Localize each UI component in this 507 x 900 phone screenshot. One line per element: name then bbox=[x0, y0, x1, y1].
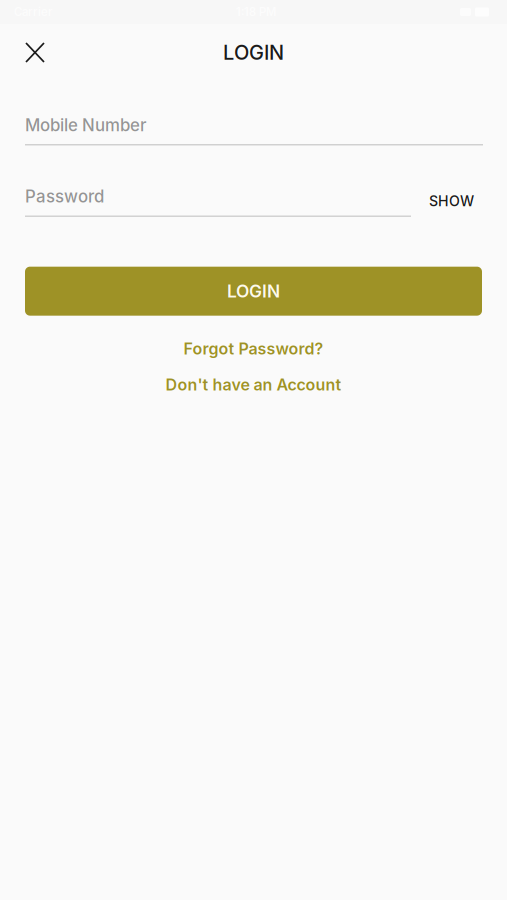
button[interactable]: Show password bbox=[429, 193, 482, 217]
staticText: Don't have an Account bbox=[165, 375, 341, 394]
button[interactable]: Close bbox=[0, 34, 57, 71]
staticText: Mobile Number bbox=[25, 115, 146, 135]
button[interactable]: Forgot Password? bbox=[0, 338, 507, 360]
staticText: SHOW bbox=[429, 193, 474, 210]
staticText: Password bbox=[25, 186, 104, 207]
staticText: LOGIN bbox=[223, 40, 284, 65]
button[interactable]: LOGIN bbox=[25, 267, 482, 316]
staticText: Forgot Password? bbox=[183, 339, 323, 358]
button[interactable]: Don't have an Account bbox=[0, 374, 507, 396]
staticText: LOGIN bbox=[227, 281, 280, 302]
